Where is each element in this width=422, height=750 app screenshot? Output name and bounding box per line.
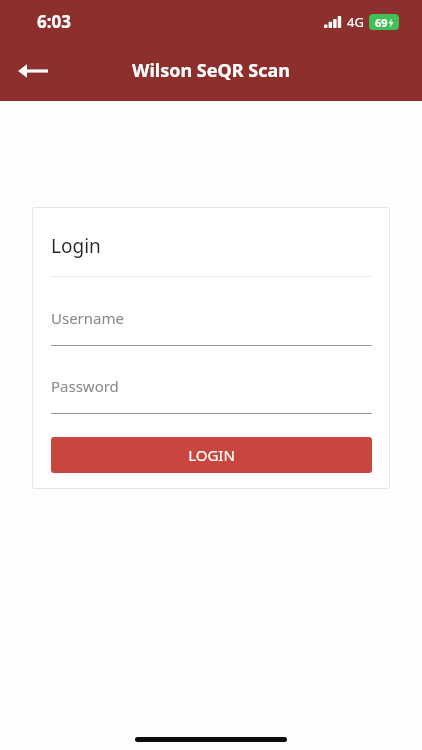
- button[interactable]: Password: [51, 376, 372, 414]
- staticText: 69: [375, 15, 388, 30]
- staticText: Login: [51, 233, 101, 259]
- button[interactable]: LOGIN: [51, 437, 372, 473]
- staticText: Wilson SeQR Scan: [132, 58, 290, 83]
- staticText: LOGIN: [188, 445, 235, 465]
- button[interactable]: Back: [12, 54, 54, 88]
- button[interactable]: Username: [51, 308, 372, 346]
- staticText: 4G: [347, 13, 364, 31]
- staticText: Password: [51, 376, 119, 396]
- staticText: 6:03: [37, 10, 71, 33]
- staticText: Username: [51, 308, 124, 328]
